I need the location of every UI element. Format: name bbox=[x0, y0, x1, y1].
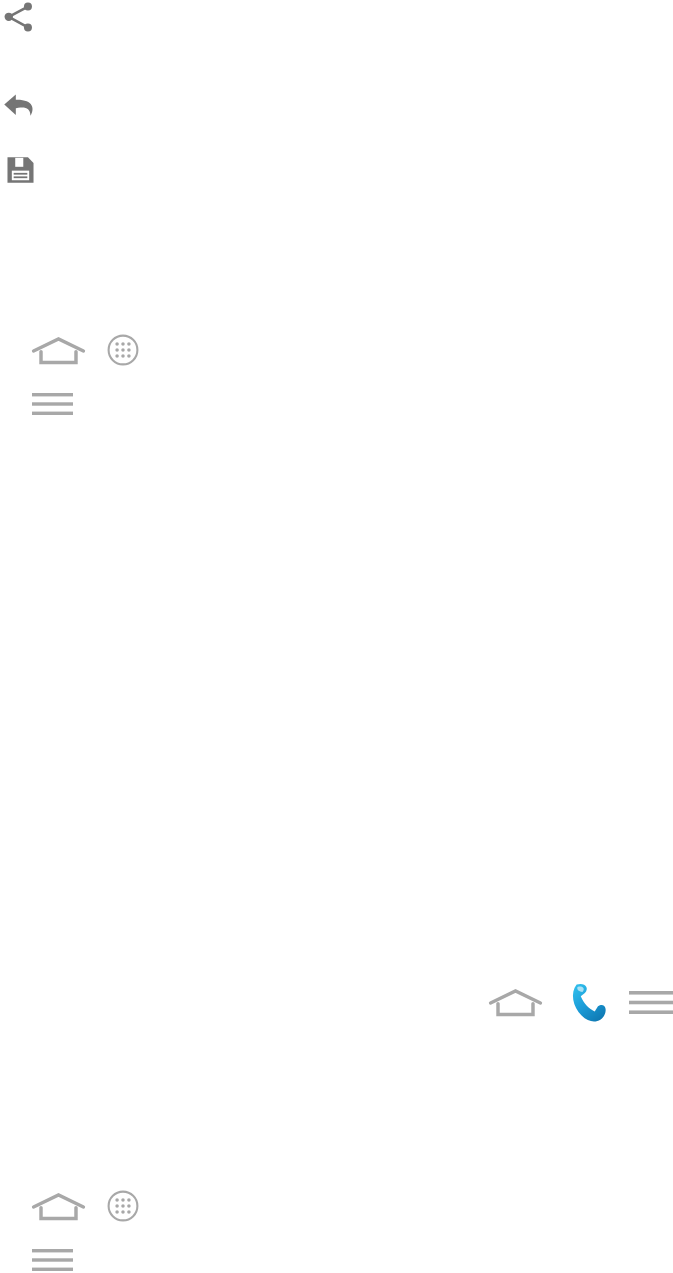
button[interactable]: Save bbox=[5, 154, 36, 186]
button[interactable]: Apps bbox=[107, 334, 139, 366]
button[interactable]: Home bbox=[32, 336, 85, 366]
button[interactable]: Home bbox=[32, 1192, 85, 1222]
button[interactable]: Call bbox=[566, 982, 607, 1024]
button[interactable]: Reply bbox=[3, 90, 35, 123]
button[interactable]: Menu bbox=[32, 393, 73, 415]
button[interactable]: Menu bbox=[629, 991, 673, 1014]
button[interactable]: Home bbox=[489, 988, 542, 1018]
button[interactable]: Menu bbox=[32, 1249, 73, 1271]
button[interactable]: Apps bbox=[107, 1190, 139, 1222]
button[interactable]: Share bbox=[3, 1, 35, 34]
